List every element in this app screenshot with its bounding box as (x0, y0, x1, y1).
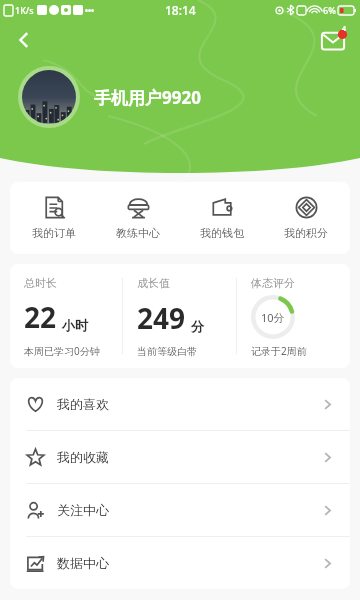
staticText: 4 (342, 24, 347, 34)
button[interactable]: 关注中心 (10, 484, 350, 536)
staticText: 1K/s (15, 4, 34, 16)
staticText: 我的收藏 (57, 449, 109, 465)
staticText: 我的钱包 (200, 226, 244, 240)
staticText: 6% (323, 4, 336, 16)
button[interactable]: 体态评分 (237, 264, 350, 368)
button[interactable]: 我的订单 (14, 190, 94, 246)
staticText: 当前等级白带 (137, 345, 197, 358)
staticText: 22 (24, 298, 57, 336)
staticText: 小时 (62, 317, 88, 333)
button[interactable]: 教练中心 (98, 190, 178, 246)
staticText: 10分 (261, 310, 285, 325)
staticText: 成长值 (137, 276, 170, 290)
staticText: 数据中心 (57, 555, 109, 571)
button[interactable]: Messages (316, 23, 350, 57)
staticText: 我的订单 (32, 226, 76, 240)
button[interactable]: 我的喜欢 (10, 378, 350, 430)
button[interactable]: 数据中心 (10, 537, 350, 589)
staticText: 体态评分 (251, 276, 295, 290)
staticText: 教练中心 (116, 226, 160, 240)
staticText: 分 (191, 318, 204, 334)
button[interactable]: 我的收藏 (10, 431, 350, 483)
staticText: 记录于2周前 (251, 344, 307, 358)
staticText: 我的喜欢 (57, 396, 109, 412)
staticText: ••• (85, 5, 95, 16)
staticText: 我的积分 (284, 226, 328, 240)
button[interactable]: Back (6, 22, 42, 58)
button[interactable]: 我的钱包 (182, 190, 262, 246)
staticText: 手机用户9920 (94, 86, 201, 109)
staticText: 本周已学习0分钟 (24, 344, 100, 358)
staticText: 249 (137, 299, 186, 337)
button[interactable]: 手机用户9920 (18, 66, 360, 128)
staticText: 18:14 (165, 2, 196, 18)
button[interactable]: 我的积分 (266, 190, 346, 246)
button[interactable]: 成长值 (123, 264, 236, 368)
staticText: 总时长 (24, 276, 57, 290)
staticText: 关注中心 (57, 502, 109, 518)
button[interactable]: 总时长 (10, 264, 122, 368)
